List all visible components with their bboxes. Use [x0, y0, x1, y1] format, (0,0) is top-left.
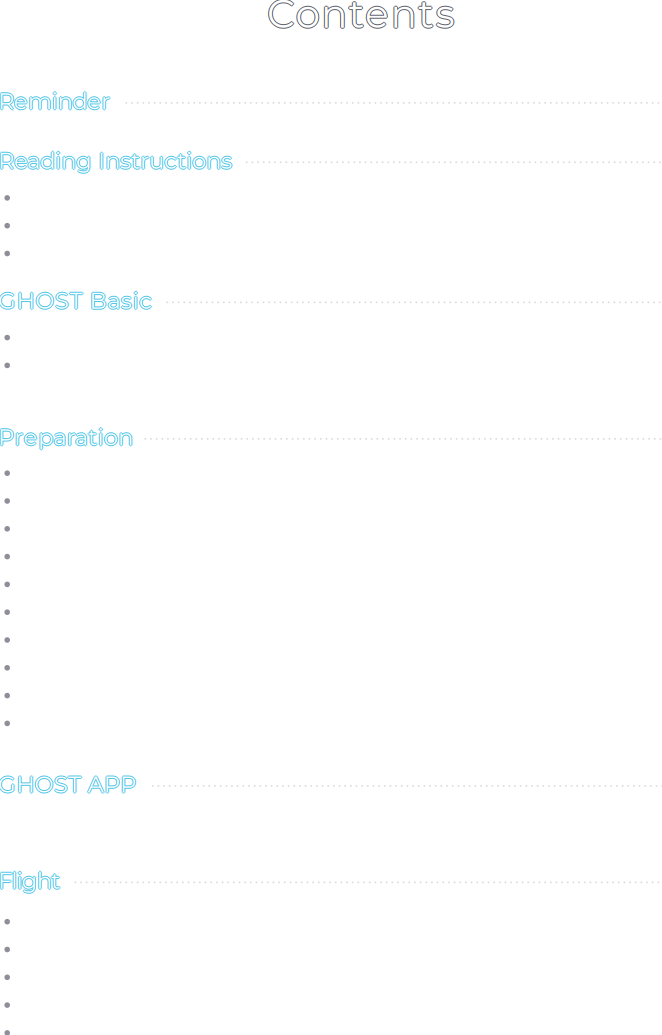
- staticText: Contents: [267, 0, 466, 37]
- staticText: Reminder: [0, 87, 117, 115]
- staticText: Contents: [267, 0, 466, 38]
- button[interactable]: [0, 324, 662, 351]
- staticText: GHOST Basic: [0, 287, 160, 314]
- staticText: Reading Instructions: [0, 147, 238, 174]
- button[interactable]: Reminder: [0, 91, 662, 117]
- staticText: Reminder: [0, 87, 116, 115]
- staticText: Preparation: [0, 423, 140, 451]
- staticText: Flight: [0, 866, 65, 893]
- button[interactable]: Contents: [267, 0, 467, 30]
- staticText: Preparation: [0, 424, 139, 452]
- staticText: Reading Instructions: [0, 148, 238, 175]
- staticText: Reminder: [0, 87, 115, 115]
- button[interactable]: [0, 570, 662, 598]
- button[interactable]: GHOST Basic: [0, 291, 662, 317]
- staticText: GHOST APP: [0, 770, 141, 798]
- staticText: Contents: [268, 0, 467, 38]
- button[interactable]: [0, 908, 662, 936]
- staticText: GHOST Basic: [0, 287, 159, 314]
- staticText: Contents: [267, 0, 466, 39]
- button[interactable]: GHOST APP: [0, 774, 662, 800]
- staticText: Reading Instructions: [0, 147, 237, 174]
- staticText: GHOST APP: [0, 770, 142, 798]
- button[interactable]: Reading Instructions: [0, 151, 662, 177]
- button[interactable]: [0, 487, 662, 515]
- button[interactable]: [0, 1019, 662, 1035]
- staticText: Reminder: [0, 88, 116, 116]
- staticText: Flight: [0, 867, 64, 894]
- staticText: Flight: [0, 867, 65, 894]
- button[interactable]: [0, 543, 662, 570]
- staticText: Reading Instructions: [0, 147, 239, 174]
- staticText: Preparation: [0, 422, 139, 450]
- staticText: Reading Instructions: [0, 146, 238, 173]
- staticText: GHOST Basic: [0, 287, 158, 314]
- staticText: Preparation: [0, 423, 139, 451]
- button[interactable]: [0, 963, 662, 991]
- button[interactable]: [0, 351, 662, 379]
- button[interactable]: [0, 991, 662, 1019]
- button[interactable]: [0, 626, 662, 654]
- staticText: GHOST Basic: [0, 286, 159, 313]
- staticText: GHOST APP: [0, 770, 143, 798]
- button[interactable]: Flight: [0, 871, 662, 897]
- button[interactable]: [0, 936, 662, 963]
- button[interactable]: [0, 682, 662, 709]
- staticText: Reminder: [0, 86, 116, 114]
- button[interactable]: [0, 240, 662, 267]
- staticText: Contents: [266, 0, 465, 38]
- staticText: Preparation: [0, 423, 138, 451]
- button[interactable]: [0, 654, 662, 682]
- button[interactable]: [0, 515, 662, 543]
- button[interactable]: [0, 459, 662, 487]
- staticText: GHOST APP: [0, 769, 142, 797]
- staticText: GHOST APP: [0, 771, 142, 799]
- button[interactable]: [0, 709, 662, 737]
- staticText: Flight: [0, 867, 66, 894]
- staticText: Flight: [0, 868, 65, 895]
- button[interactable]: [0, 184, 662, 212]
- staticText: GHOST Basic: [0, 288, 159, 315]
- button[interactable]: [0, 598, 662, 626]
- button[interactable]: Preparation: [0, 427, 662, 453]
- button[interactable]: [0, 212, 662, 240]
